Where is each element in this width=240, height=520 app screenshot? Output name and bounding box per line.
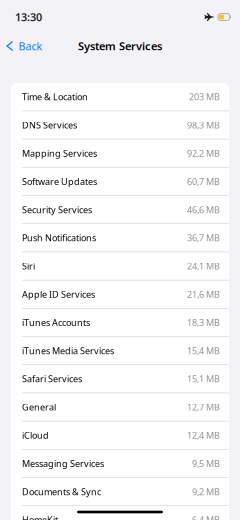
button[interactable]: Software Updates [11,168,229,196]
button[interactable]: Apple ID Services [11,280,229,309]
button[interactable]: HomeKit [11,506,229,520]
staticText: Mapping Services [22,147,97,159]
button[interactable]: iTunes Accounts [11,309,229,337]
staticText: Messaging Services [22,457,104,470]
staticText: HomeKit [22,514,58,520]
staticText: 36,7 MB [187,232,220,244]
staticText: 98,3 MB [187,119,220,131]
staticText: 21,6 MB [187,288,220,300]
button[interactable]: Siri [11,252,229,280]
staticText: Apple ID Services [22,288,95,300]
button[interactable]: DNS Services [11,111,229,139]
staticText: Back [18,39,42,53]
staticText: Siri [22,260,35,272]
staticText: 9,5 MB [192,457,220,470]
staticText: 15,4 MB [187,344,220,357]
staticText: Software Updates [22,175,97,188]
staticText: 18,3 MB [187,316,220,329]
staticText: iTunes Accounts [22,316,90,329]
button[interactable]: iTunes Media Services [11,337,229,365]
staticText: 9,2 MB [192,485,220,498]
staticText: General [22,401,56,413]
staticText: 12,4 MB [187,429,220,441]
button[interactable]: Security Services [11,196,229,224]
button[interactable]: Back [0,34,48,58]
staticText: 15,1 MB [187,373,220,385]
button[interactable]: Messaging Services [11,450,229,478]
staticText: iCloud [22,429,49,441]
staticText: 92,2 MB [187,147,220,159]
staticText: 12,7 MB [187,401,220,413]
staticText: 203 MB [189,91,220,103]
staticText: 6,4 MB [192,514,220,520]
staticText: DNS Services [22,119,77,131]
staticText: iTunes Media Services [22,344,114,357]
staticText: 60,7 MB [187,175,220,188]
staticText: 13:30 [15,10,42,24]
button[interactable]: Safari Services [11,365,229,393]
staticText: 24,1 MB [187,260,220,272]
staticText: Safari Services [22,373,82,385]
button[interactable]: Mapping Services [11,139,229,168]
staticText: Documents & Sync [22,485,101,498]
staticText: Security Services [22,203,92,216]
button[interactable]: Documents & Sync [11,478,229,506]
button[interactable]: iCloud [11,421,229,450]
button[interactable]: Time & Location [11,83,229,111]
button[interactable]: General [11,393,229,421]
button[interactable]: Push Notifications [11,224,229,252]
staticText: Push Notifications [22,232,96,244]
staticText: 46,6 MB [187,203,220,216]
staticText: Time & Location [22,91,88,103]
staticText: System Services [78,38,162,54]
